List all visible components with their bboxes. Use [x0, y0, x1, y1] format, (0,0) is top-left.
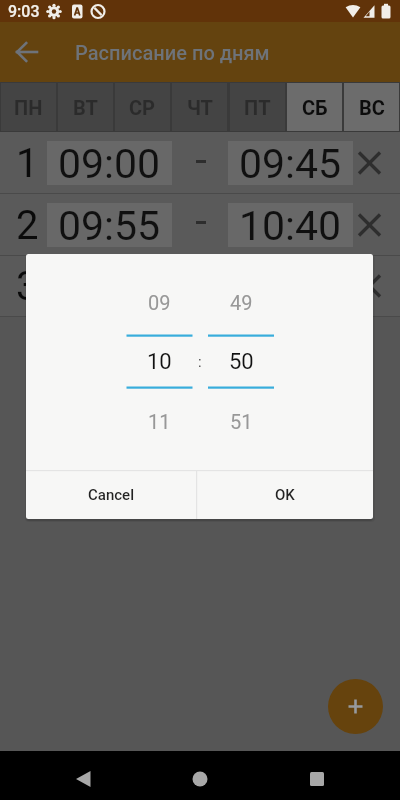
staticText: Расписание по дням: [75, 41, 270, 64]
button[interactable]: ЧТ: [172, 83, 227, 131]
staticText: ВС: [359, 96, 385, 119]
staticText: 1: [16, 140, 39, 187]
staticText: 10:50: [58, 263, 161, 307]
staticText: 2: [16, 202, 39, 249]
staticText: 3: [16, 263, 39, 310]
staticText: 09:45: [239, 140, 342, 184]
staticText: Cancel: [88, 486, 135, 504]
button[interactable]: [352, 201, 388, 249]
staticText: ПН: [14, 96, 43, 119]
button[interactable]: ВС: [344, 83, 399, 131]
staticText: 49: [230, 291, 253, 314]
staticText: 10: [147, 349, 172, 375]
button[interactable]: OK: [197, 471, 373, 519]
button[interactable]: СР: [115, 83, 170, 131]
staticText: ЧТ: [187, 96, 213, 119]
button[interactable]: [180, 755, 220, 795]
staticText: 09: [148, 291, 171, 314]
staticText: СР: [129, 96, 156, 119]
staticText: 50: [229, 349, 254, 375]
staticText: 09:55: [58, 202, 161, 246]
button[interactable]: [297, 755, 337, 795]
button[interactable]: [63, 755, 103, 795]
button[interactable]: 10:40: [228, 203, 353, 247]
button[interactable]: СБ: [287, 83, 342, 131]
staticText: 11: [148, 410, 171, 433]
button[interactable]: ПТ: [230, 83, 285, 131]
staticText: ВТ: [73, 96, 98, 119]
button[interactable]: 09:00: [47, 141, 172, 185]
staticText: 09:00: [58, 140, 161, 184]
staticText: 9:03: [8, 2, 40, 21]
button[interactable]: 11:35: [228, 264, 353, 308]
staticText: 10:40: [239, 202, 342, 246]
staticText: OK: [275, 486, 295, 504]
staticText: :: [198, 353, 202, 371]
button[interactable]: 09:55: [47, 203, 172, 247]
button[interactable]: 09:45: [228, 141, 353, 185]
button[interactable]: 10:50: [47, 264, 172, 308]
button[interactable]: [328, 679, 383, 734]
button[interactable]: ВТ: [58, 83, 113, 131]
staticText: 51: [230, 410, 253, 433]
button[interactable]: [352, 262, 388, 310]
staticText: ПТ: [244, 96, 271, 119]
button[interactable]: [8, 34, 46, 70]
button[interactable]: [352, 139, 388, 187]
staticText: 11:35: [239, 263, 342, 307]
staticText: СБ: [302, 96, 328, 119]
button[interactable]: ПН: [1, 83, 56, 131]
button[interactable]: Cancel: [26, 471, 196, 519]
